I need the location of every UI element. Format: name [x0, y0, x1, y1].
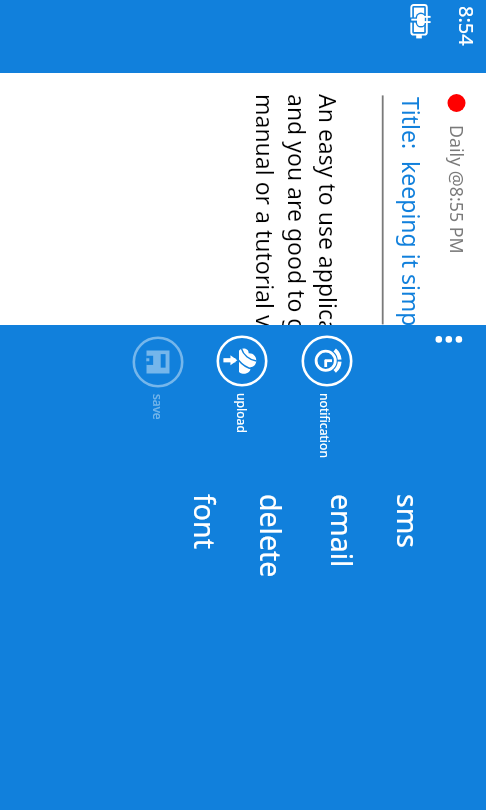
staticText: Title: keeping it simp [396, 97, 427, 325]
button[interactable]: sms [395, 486, 458, 786]
staticText: An easy to use application for taking no… [249, 94, 344, 325]
staticText: save [149, 394, 166, 420]
staticText: sms [388, 494, 427, 548]
button[interactable]: Notification [297, 331, 357, 441]
staticText: delete [251, 494, 290, 578]
button[interactable]: Save [128, 332, 188, 442]
staticText: email [322, 494, 361, 568]
staticText: font [185, 494, 224, 549]
staticText: notification [316, 393, 333, 458]
button[interactable]: delete [264, 486, 336, 786]
button[interactable]: font [192, 486, 264, 786]
staticText: upload [233, 393, 250, 433]
button[interactable]: email [332, 486, 400, 786]
staticText: 8:54 [453, 6, 480, 46]
staticText: Daily @8:55 PM [445, 125, 469, 254]
button[interactable]: More options [425, 325, 486, 361]
button[interactable]: Upload [212, 331, 272, 441]
